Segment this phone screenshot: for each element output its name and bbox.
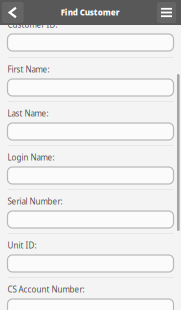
button[interactable] (7, 299, 173, 310)
button[interactable] (7, 167, 173, 184)
staticText: Customer ID: (7, 19, 57, 30)
staticText: Serial Number: (7, 196, 62, 207)
button[interactable] (7, 79, 173, 96)
button[interactable] (7, 123, 173, 140)
button[interactable] (7, 255, 173, 272)
staticText: Last Name: (7, 108, 48, 119)
staticText: First Name: (7, 64, 49, 75)
button[interactable] (7, 211, 173, 228)
staticText: CS Account Number: (7, 284, 84, 295)
button[interactable]: Menu (157, 2, 176, 23)
staticText: Find Customer (61, 7, 120, 18)
staticText: Unit ID: (7, 240, 36, 251)
button[interactable] (7, 34, 173, 51)
staticText: Login Name: (7, 152, 54, 163)
button[interactable]: Back (2, 2, 24, 23)
